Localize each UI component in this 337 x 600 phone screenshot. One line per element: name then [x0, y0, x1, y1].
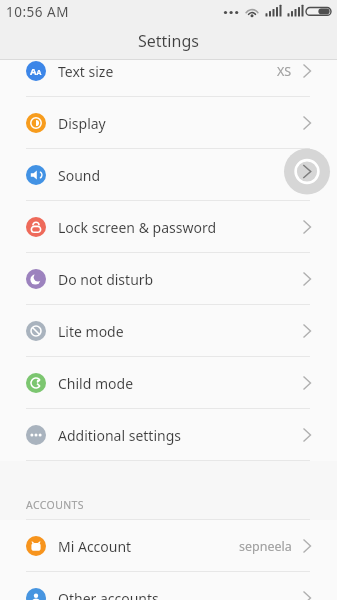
- staticText: Sound: [58, 166, 101, 185]
- staticText: Lock screen & password: [58, 218, 217, 237]
- button[interactable]: Additional settings: [0, 409, 337, 461]
- button[interactable]: Sound: [0, 149, 337, 201]
- staticText: Display: [58, 114, 106, 133]
- staticText: Additional settings: [58, 426, 181, 445]
- staticText: Settings: [138, 30, 199, 52]
- staticText: Text size: [58, 62, 114, 81]
- button[interactable]: Child mode: [0, 357, 337, 409]
- button[interactable]: Other accounts: [0, 572, 337, 600]
- staticText: Other accounts: [58, 589, 159, 600]
- staticText: XS: [277, 63, 292, 80]
- staticText: Child mode: [58, 374, 134, 393]
- button[interactable]: Mi Account: [0, 520, 337, 572]
- staticText: ACCOUNTS: [26, 498, 85, 512]
- staticText: Do not disturb: [58, 270, 154, 289]
- button[interactable]: Lite mode: [0, 305, 337, 357]
- staticText: 10:56 AM: [6, 3, 69, 21]
- staticText: AA: [30, 65, 42, 78]
- staticText: Lite mode: [58, 322, 124, 341]
- button[interactable]: Lock screen & password: [0, 201, 337, 253]
- button[interactable]: Do not disturb: [0, 253, 337, 305]
- button[interactable]: AA: [0, 60, 337, 97]
- staticText: sepneela: [239, 538, 292, 555]
- button[interactable]: Display: [0, 97, 337, 149]
- staticText: Mi Account: [58, 537, 132, 556]
